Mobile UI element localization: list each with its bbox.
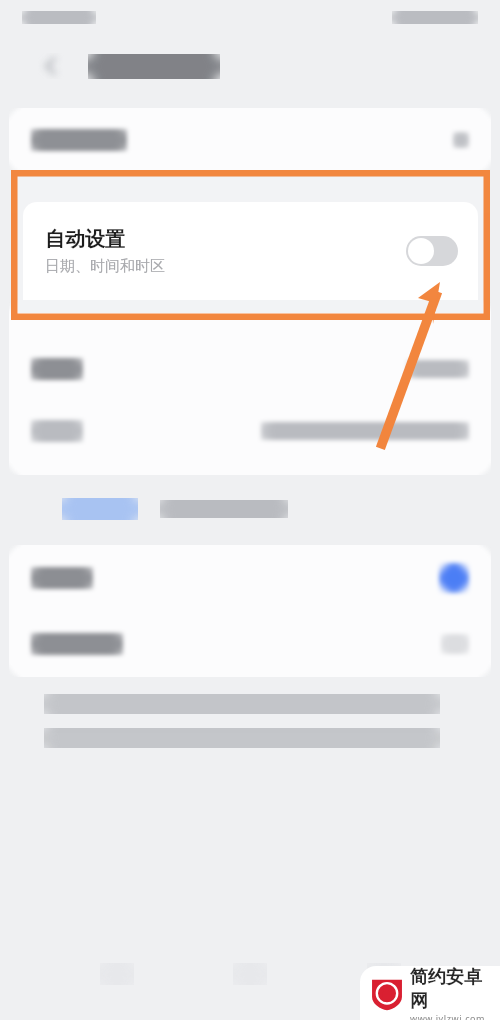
button[interactable] — [9, 545, 491, 611]
button[interactable]: 自动设置 — [23, 202, 478, 300]
staticText: 简约安卓网 — [410, 966, 498, 1012]
button[interactable]: Back — [38, 53, 64, 79]
button[interactable]: 自动设置开关 — [406, 236, 458, 266]
button[interactable] — [9, 338, 491, 400]
button[interactable] — [9, 400, 491, 462]
button[interactable] — [9, 611, 491, 677]
button[interactable] — [9, 108, 491, 172]
staticText: www.jylzwj.com — [410, 1012, 486, 1020]
staticText: 自动设置 — [45, 227, 125, 252]
staticText: 日期、时间和时区 — [45, 257, 165, 276]
